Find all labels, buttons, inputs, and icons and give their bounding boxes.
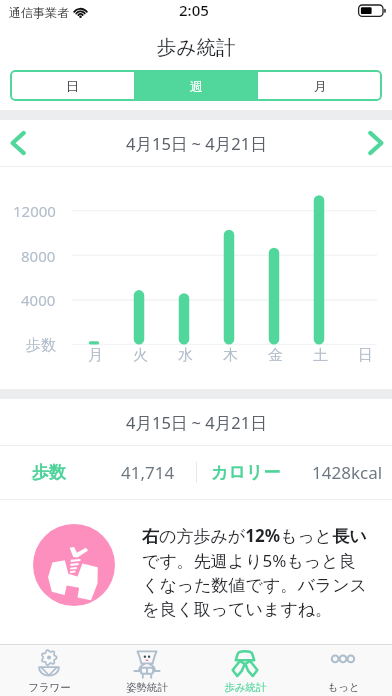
button[interactable]: 月: [258, 70, 382, 101]
staticText: 41,714: [121, 461, 175, 484]
staticText: 月: [88, 346, 103, 365]
button[interactable]: フラワー: [0, 645, 98, 696]
staticText: 水: [178, 346, 193, 365]
staticText: 日: [66, 78, 79, 94]
button[interactable]: カロリー: [196, 446, 392, 499]
staticText: 右の方歩みが12%もっと長いです。先週より5%もっと良くなった数値です。バランス…: [142, 524, 370, 620]
staticText: 歩み統計: [224, 681, 267, 694]
staticText: 歩数: [26, 336, 56, 355]
staticText: 4月15日 ~ 4月21日: [126, 132, 267, 155]
staticText: 歩数: [32, 462, 66, 483]
staticText: 通信事業者: [9, 5, 69, 20]
staticText: 歩み統計: [157, 35, 236, 60]
button[interactable]: 週: [134, 70, 258, 101]
staticText: 2:05: [179, 0, 209, 20]
button[interactable]: 歩数: [0, 446, 196, 499]
staticText: 木: [223, 346, 238, 365]
staticText: 12000: [13, 201, 56, 221]
button[interactable]: 歩み統計: [196, 645, 294, 696]
staticText: 8000: [21, 246, 56, 266]
staticText: 4000: [21, 290, 56, 310]
button[interactable]: Next week: [357, 120, 392, 166]
staticText: 火: [133, 346, 148, 365]
staticText: 日: [358, 346, 373, 365]
staticText: 土: [313, 346, 328, 365]
button[interactable]: 日: [10, 70, 134, 101]
staticText: 4月15日 ~ 4月21日: [126, 411, 267, 434]
staticText: カロリー: [211, 462, 281, 483]
button[interactable]: Previous week: [0, 120, 37, 166]
staticText: フラワー: [28, 681, 71, 694]
staticText: 金: [268, 346, 283, 365]
staticText: 月: [314, 78, 327, 94]
staticText: 姿勢統計: [126, 681, 168, 694]
button[interactable]: もっと: [294, 645, 392, 696]
staticText: 週: [190, 78, 203, 94]
button[interactable]: 姿勢統計: [98, 645, 196, 696]
staticText: もっと: [327, 681, 360, 694]
staticText: 1428kcal: [312, 461, 383, 484]
